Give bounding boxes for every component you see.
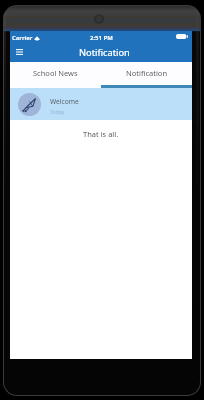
button[interactable]: Open navigation menu [10,43,28,61]
staticText: Welcome [50,97,79,106]
staticText: Carrier [12,34,33,42]
staticText: Notification [126,68,168,78]
staticText: School News [33,68,78,78]
staticText: Notification [79,46,130,59]
button[interactable]: Welcome [10,88,192,120]
button[interactable]: School News [10,62,101,85]
button[interactable]: Notification [101,62,192,85]
staticText: 2:51 PM [90,34,113,42]
staticText: That is all. [83,129,119,139]
staticText: Today [50,108,65,115]
